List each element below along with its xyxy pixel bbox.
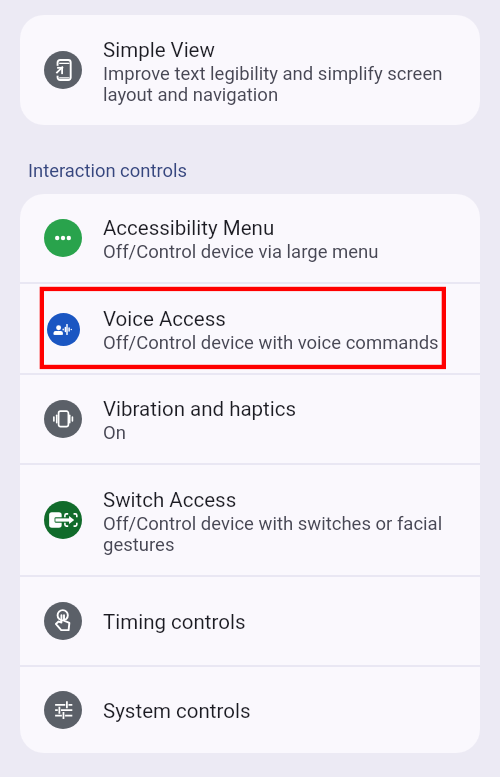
staticText: On [103, 422, 126, 443]
staticText: Improve text legibility and simplify scr… [103, 63, 460, 105]
staticText: Off/Control device with switches or faci… [103, 513, 460, 555]
staticText: System controls [103, 697, 251, 724]
staticText: Voice Access [103, 305, 226, 332]
staticText: Switch Access [103, 486, 237, 513]
button[interactable]: Accessibility Menu [20, 194, 480, 282]
staticText: Vibration and haptics [103, 395, 297, 422]
button[interactable]: System controls [20, 667, 480, 753]
button[interactable]: Vibration and haptics [20, 375, 480, 463]
button[interactable]: Voice Access [20, 284, 480, 373]
staticText: Simple View [103, 36, 215, 63]
staticText: Interaction controls [28, 160, 187, 182]
staticText: Accessibility Menu [103, 214, 275, 241]
staticText: Off/Control device via large menu [103, 241, 379, 262]
button[interactable]: Simple View [20, 15, 480, 125]
button[interactable]: Timing controls [20, 577, 480, 665]
staticText: Timing controls [103, 608, 246, 635]
button[interactable]: Switch Access [20, 465, 480, 575]
staticText: Off/Control device with voice commands [103, 332, 439, 353]
